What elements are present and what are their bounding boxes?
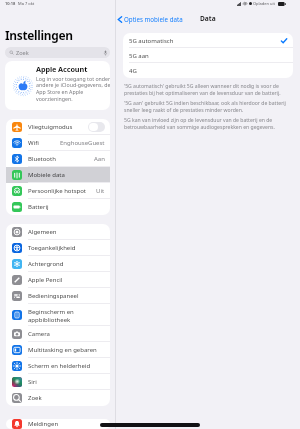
staticText: Aan [94,155,105,163]
staticText: Multitasking en gebaren [28,346,105,354]
button[interactable]: Zoek [5,47,110,58]
staticText: Apple Account [36,64,88,74]
staticText: Uit [96,187,105,195]
button[interactable]: Scherm en helderheid [6,358,110,374]
staticText: Vliegtuigmodus [28,123,88,131]
button[interactable]: Siri [6,374,110,390]
button[interactable]: Vliegtuigmodus aan/uit [88,122,105,132]
staticText: Achtergrond [28,260,105,268]
staticText: Bedieningspaneel [28,292,105,300]
button[interactable]: Achtergrond [6,256,110,272]
staticText: Mobiele data [28,171,105,179]
staticText: Wifi [28,139,60,147]
button[interactable]: Vliegtuigmodus [6,119,110,135]
button[interactable]: 4G [123,63,293,78]
button[interactable]: Mobiele data [6,167,110,183]
button[interactable]: Bedieningspaneel [6,288,110,304]
button[interactable]: 5G aan [123,48,293,63]
staticText: Beginscherm en appbibliotheek [28,308,105,323]
button[interactable]: Zoek [6,390,110,406]
button[interactable]: Apple Account [5,61,110,110]
staticText: Zoek [28,394,105,402]
button[interactable]: Persoonlijke hotspot [6,183,110,199]
button[interactable]: Toegankelijkheid [6,240,110,256]
staticText: Algemeen [28,228,105,236]
button[interactable]: Wifi [6,135,110,151]
staticText: 5G aan [129,52,287,60]
staticText: Toegankelijkheid [28,244,105,252]
staticText: 4G [129,67,287,75]
staticText: Opladen uit [253,1,276,6]
button[interactable]: Bluetooth [6,151,110,167]
button[interactable]: Camera [6,326,110,342]
staticText: EnghouseGuest [60,139,105,147]
staticText: Ma 7 okt [18,1,35,6]
staticText: 5G kan van invloed zijn op de levensduur… [124,117,291,130]
staticText: Camera [28,330,105,338]
button[interactable]: Apple Pencil [6,272,110,288]
staticText: 5G automatisch [129,37,281,45]
staticText: '5G automatisch' gebruikt 5G alleen wann… [124,83,291,96]
staticText: Persoonlijke hotspot [28,187,96,195]
staticText: Instellingen [5,27,73,43]
staticText: Batterij [28,203,105,211]
staticText: Apple Pencil [28,276,105,284]
staticText: Data [200,14,216,23]
staticText: Bluetooth [28,155,94,163]
staticText: Zoek [16,49,29,57]
button[interactable]: Algemeen [6,224,110,240]
button[interactable]: 5G automatisch [123,33,293,48]
staticText: '5G aan' gebruikt 5G indien beschikbaar,… [124,100,291,113]
button[interactable]: Batterij [6,199,110,215]
staticText: Opties mobiele data [124,15,183,23]
button[interactable]: Opties mobiele data [118,15,183,23]
button[interactable]: Meldingen [6,419,110,429]
staticText: Meldingen [28,420,105,428]
button[interactable]: Multitasking en gebaren [6,342,110,358]
staticText: Siri [28,378,105,386]
staticText: Scherm en helderheid [28,362,105,370]
button[interactable]: Beginscherm en appbibliotheek [6,304,110,326]
staticText: 10:18 [5,1,16,6]
staticText: Log in voor toegang tot onder andere je … [36,75,110,103]
